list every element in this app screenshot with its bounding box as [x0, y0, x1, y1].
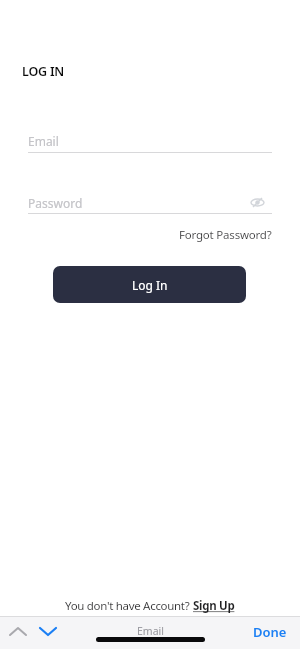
staticText: Password: [28, 195, 83, 211]
staticText: Email: [137, 624, 164, 638]
button[interactable]: [8, 624, 28, 638]
button[interactable]: Sign Up: [193, 598, 235, 614]
button[interactable]: Forgot Password?: [179, 227, 272, 243]
button[interactable]: Done: [253, 623, 287, 641]
staticText: Log In: [132, 277, 168, 293]
staticText: You don't have Account?: [65, 598, 193, 614]
staticText: Sign Up: [193, 598, 235, 614]
button[interactable]: Password: [28, 195, 272, 214]
staticText: Done: [253, 623, 287, 641]
staticText: LOG IN: [22, 63, 65, 80]
button[interactable]: Log In: [53, 266, 246, 303]
button[interactable]: Email: [28, 133, 272, 153]
staticText: Email: [28, 133, 59, 149]
button[interactable]: [38, 624, 58, 638]
staticText: Forgot Password?: [179, 227, 272, 243]
